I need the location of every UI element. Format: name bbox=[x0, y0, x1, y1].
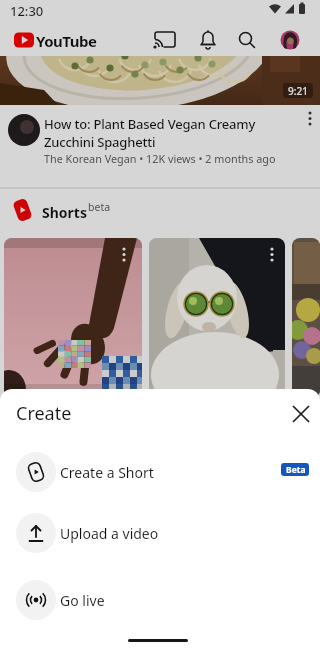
button[interactable] bbox=[235, 28, 259, 52]
button[interactable]: Upload a video bbox=[0, 513, 320, 557]
staticText: Upload a video bbox=[60, 524, 159, 543]
button[interactable] bbox=[4, 238, 142, 398]
button[interactable] bbox=[278, 28, 302, 52]
staticText: Create bbox=[16, 401, 72, 426]
staticText: Beta bbox=[286, 464, 306, 476]
staticText: 12:30 bbox=[10, 2, 44, 20]
button[interactable]: How to: Plant Based Vegan Creamy bbox=[0, 105, 320, 177]
staticText: Create a Short bbox=[60, 463, 154, 482]
staticText: How to: Plant Based Vegan Creamy bbox=[44, 115, 256, 133]
button[interactable] bbox=[149, 238, 285, 398]
staticText: YouTube bbox=[36, 31, 97, 51]
staticText: Shorts bbox=[42, 203, 87, 222]
staticText: Go live bbox=[60, 591, 105, 610]
staticText: The Korean Vegan • 12K views • 2 months … bbox=[44, 151, 276, 166]
staticText: Zucchini Spaghetti bbox=[44, 133, 156, 151]
staticText: beta bbox=[88, 200, 111, 214]
staticText: 9:21 bbox=[288, 84, 308, 98]
button[interactable] bbox=[288, 401, 314, 427]
button[interactable] bbox=[153, 28, 177, 52]
button[interactable] bbox=[196, 28, 220, 52]
button[interactable]: Go live bbox=[0, 580, 320, 624]
button[interactable] bbox=[292, 238, 320, 398]
button[interactable]: Create a Short bbox=[0, 452, 320, 496]
button[interactable]: 9:21 bbox=[0, 56, 320, 105]
